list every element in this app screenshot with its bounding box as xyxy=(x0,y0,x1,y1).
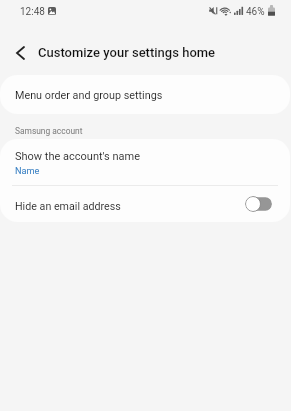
button[interactable]: Hide an email address xyxy=(0,186,290,222)
staticText: 46% xyxy=(246,6,265,18)
button[interactable]: Hide an email address switch, off xyxy=(245,196,272,212)
button[interactable]: Navigate up xyxy=(4,37,36,69)
staticText: Customize your settings home xyxy=(38,45,216,60)
staticText: Samsung account xyxy=(15,126,83,136)
staticText: Name xyxy=(15,165,40,176)
staticText: 12:48 xyxy=(20,6,45,18)
staticText: Menu order and group settings xyxy=(15,89,163,102)
button[interactable]: Menu order and group settings xyxy=(0,75,290,114)
staticText: Hide an email address xyxy=(15,200,121,213)
button[interactable]: Show the account's name xyxy=(0,139,290,185)
staticText: Show the account's name xyxy=(15,150,141,163)
